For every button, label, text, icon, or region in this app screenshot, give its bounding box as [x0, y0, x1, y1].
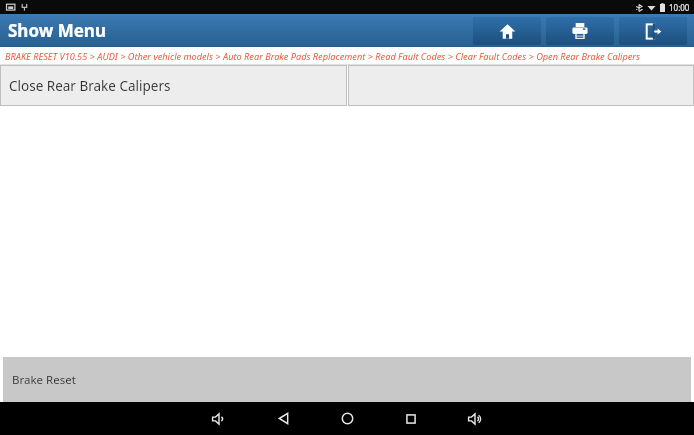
button[interactable]: Exit — [619, 17, 687, 45]
button[interactable]: Print — [546, 17, 614, 45]
staticText: Brake Reset — [12, 372, 76, 388]
staticText: 10:00 — [669, 2, 690, 13]
button[interactable]: Volume up — [456, 402, 494, 435]
button[interactable]: Volume down — [200, 402, 238, 435]
button[interactable] — [348, 65, 694, 106]
button[interactable]: Home — [473, 17, 541, 45]
button[interactable]: Close Rear Brake Calipers — [0, 65, 347, 106]
button[interactable]: Brake Reset — [3, 357, 691, 402]
staticText: Close Rear Brake Calipers — [9, 77, 171, 95]
button[interactable]: Back — [264, 402, 302, 435]
button[interactable]: Home — [328, 402, 366, 435]
staticText: Show Menu — [8, 19, 106, 42]
staticText: BRAKE RESET V10.55 > AUDI > Other vehicl… — [5, 50, 640, 63]
button[interactable]: Recent apps — [392, 402, 430, 435]
